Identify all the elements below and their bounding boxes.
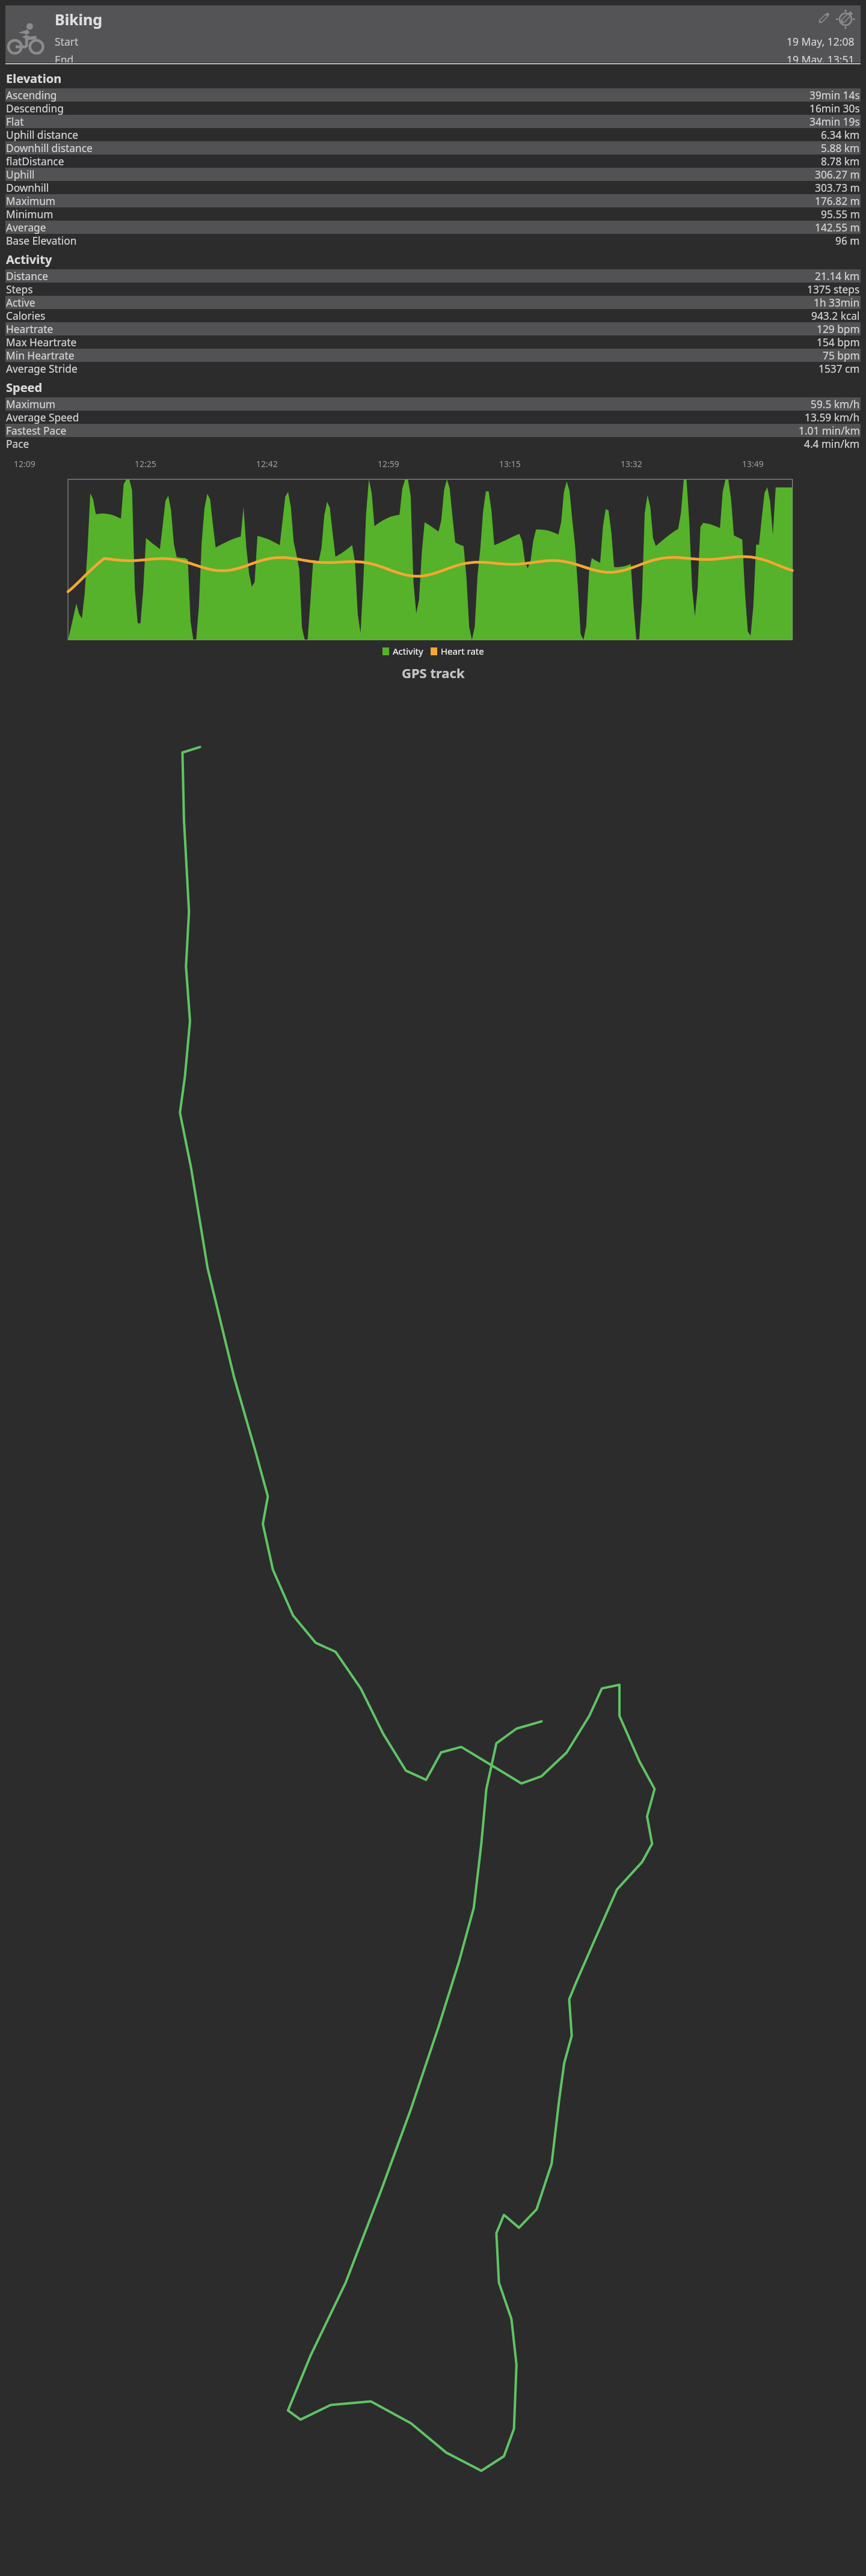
staticText: 306.27 m <box>815 168 860 181</box>
staticText: 13.59 km/h <box>805 411 860 424</box>
staticText: 13:32 <box>621 458 642 470</box>
staticText: 12:42 <box>256 458 278 470</box>
staticText: Ascending <box>6 88 57 102</box>
staticText: Pace <box>6 437 29 450</box>
staticText: Steps <box>6 283 33 296</box>
staticText: Speed <box>6 379 43 396</box>
staticText: Base Elevation <box>6 234 77 247</box>
button[interactable]: Edit GPS track <box>834 8 857 31</box>
staticText: Activity <box>393 645 423 657</box>
staticText: Minimum <box>6 207 54 221</box>
staticText: 12:09 <box>14 458 35 470</box>
staticText: Active <box>6 296 35 309</box>
button[interactable]: Biking <box>5 5 861 63</box>
button[interactable]: Distance <box>5 269 861 283</box>
staticText: 5.88 km <box>821 141 860 154</box>
staticText: GPS track <box>402 664 465 682</box>
staticText: Elevation <box>6 70 62 87</box>
button[interactable]: Uphill distance <box>5 128 861 141</box>
staticText: 12:25 <box>135 458 156 470</box>
button[interactable]: Flat <box>5 115 861 128</box>
staticText: 1.01 min/km <box>799 424 860 437</box>
staticText: Distance <box>6 269 49 283</box>
staticText: Downhill <box>6 181 49 194</box>
staticText: Max Heartrate <box>6 335 77 349</box>
staticText: 1h 33min <box>814 296 860 309</box>
button[interactable]: Ascending <box>5 88 861 102</box>
staticText: 1375 steps <box>807 283 860 296</box>
button[interactable]: Downhill distance <box>5 141 861 154</box>
button[interactable]: Average Speed <box>5 411 861 424</box>
staticText: End <box>55 52 74 63</box>
button[interactable]: Steps <box>5 283 861 296</box>
button[interactable]: Max Heartrate <box>5 335 861 349</box>
button[interactable]: Pace <box>5 437 861 450</box>
staticText: 129 bpm <box>817 322 860 335</box>
staticText: 154 bpm <box>817 335 860 349</box>
button[interactable]: Fastest Pace <box>5 424 861 437</box>
staticText: Downhill distance <box>6 141 93 154</box>
button[interactable]: Average Stride <box>5 362 861 375</box>
staticText: Activity <box>6 251 52 268</box>
staticText: 303.73 m <box>815 181 860 194</box>
staticText: Maximum <box>6 194 56 207</box>
staticText: Descending <box>6 102 64 115</box>
staticText: Flat <box>6 115 24 128</box>
staticText: Average Stride <box>6 362 78 375</box>
staticText: Min Heartrate <box>6 349 75 362</box>
staticText: Heart rate <box>441 645 484 657</box>
button[interactable]: Average <box>5 221 861 234</box>
staticText: 21.14 km <box>815 269 860 283</box>
staticText: Uphill distance <box>6 128 78 141</box>
staticText: 34min 19s <box>809 115 860 128</box>
staticText: 95.55 m <box>821 207 860 221</box>
staticText: 8.78 km <box>821 154 860 168</box>
staticText: 13:15 <box>499 458 521 470</box>
button[interactable]: Edit <box>814 8 834 28</box>
button[interactable]: Downhill <box>5 181 861 194</box>
button[interactable]: Minimum <box>5 207 861 221</box>
button[interactable]: Active <box>5 296 861 309</box>
staticText: 12:59 <box>378 458 399 470</box>
staticText: 1537 cm <box>818 362 860 375</box>
staticText: Biking <box>55 9 103 29</box>
staticText: 96 m <box>835 234 860 247</box>
button[interactable]: Maximum <box>5 194 861 207</box>
staticText: Maximum <box>6 397 56 411</box>
button[interactable]: Calories <box>5 309 861 322</box>
staticText: flatDistance <box>6 154 64 168</box>
staticText: 6.34 km <box>821 128 860 141</box>
staticText: 176.82 m <box>815 194 860 207</box>
button[interactable]: Descending <box>5 102 861 115</box>
button[interactable]: Min Heartrate <box>5 349 861 362</box>
button[interactable]: Uphill <box>5 168 861 181</box>
button[interactable]: Base Elevation <box>5 234 861 247</box>
staticText: Fastest Pace <box>6 424 67 437</box>
staticText: 16min 30s <box>809 102 860 115</box>
staticText: 142.55 m <box>815 221 860 234</box>
staticText: 943.2 kcal <box>811 309 860 322</box>
staticText: Uphill <box>6 168 35 181</box>
staticText: 75 bpm <box>823 349 860 362</box>
staticText: Average Speed <box>6 411 79 424</box>
staticText: 19 May, 13:51 <box>787 52 855 63</box>
staticText: Start <box>55 34 79 49</box>
button[interactable]: flatDistance <box>5 154 861 168</box>
staticText: 19 May, 12:08 <box>787 34 855 49</box>
staticText: Calories <box>6 309 46 322</box>
staticText: Average <box>6 221 46 234</box>
staticText: 13:49 <box>742 458 764 470</box>
staticText: 59.5 km/h <box>811 397 860 411</box>
staticText: 4.4 min/km <box>804 437 860 450</box>
staticText: 39min 14s <box>809 88 860 102</box>
staticText: Heartrate <box>6 322 54 335</box>
button[interactable]: Heartrate <box>5 322 861 335</box>
button[interactable]: Maximum <box>5 397 861 411</box>
